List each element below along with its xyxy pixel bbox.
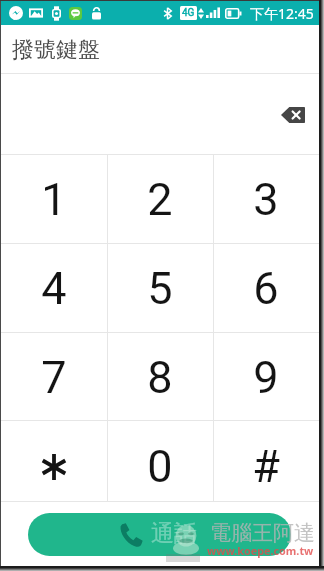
button[interactable]: 2	[107, 155, 213, 244]
button[interactable]: 1	[1, 155, 107, 244]
staticText: #	[252, 440, 280, 493]
staticText: 6	[253, 262, 279, 315]
staticText: 4G	[182, 7, 195, 19]
staticText: 撥號鍵盤	[12, 36, 100, 64]
staticText: 9	[253, 351, 279, 404]
button[interactable]: 4	[1, 244, 107, 333]
staticText: 8	[147, 351, 173, 404]
button[interactable]: 3	[213, 155, 319, 244]
button[interactable]: 5	[107, 244, 213, 333]
button[interactable]: 6	[213, 244, 319, 333]
button[interactable]: 7	[1, 333, 107, 421]
staticText: 電腦王阿達	[210, 520, 315, 546]
button[interactable]: Backspace	[273, 99, 313, 131]
staticText: 通話	[151, 519, 197, 548]
staticText: 1	[41, 173, 67, 226]
staticText: www.koepe.com.tw	[207, 543, 314, 558]
button[interactable]: #	[213, 421, 319, 502]
button[interactable]: Call	[28, 513, 291, 556]
staticText: 5	[147, 262, 173, 315]
staticText: 下午12:45	[250, 4, 314, 23]
staticText: 2	[147, 173, 173, 226]
button[interactable]	[1, 421, 107, 502]
button[interactable]: 8	[107, 333, 213, 421]
staticText: 3	[253, 173, 279, 226]
staticText: 0	[147, 440, 173, 493]
staticText: 7	[41, 351, 67, 404]
button[interactable]: 9	[213, 333, 319, 421]
button[interactable]: 0	[107, 421, 213, 502]
staticText: 4	[41, 262, 67, 315]
